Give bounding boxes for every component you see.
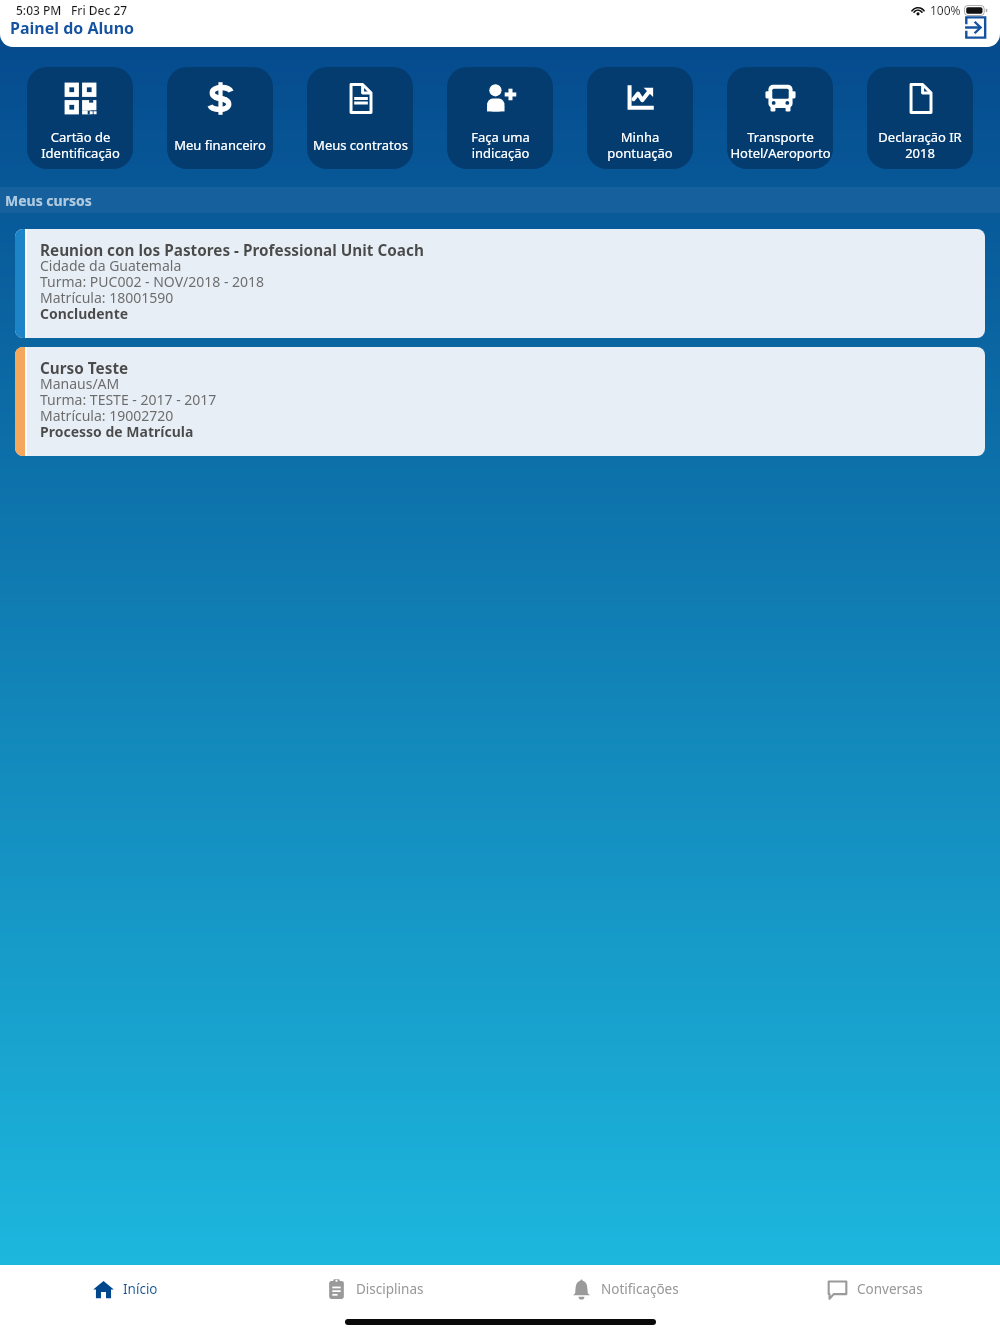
button[interactable]: Faça uma indicação: [447, 67, 553, 169]
button[interactable]: Notificações: [500, 1265, 750, 1313]
staticText: Minha pontuação: [607, 128, 673, 162]
button[interactable]: Meus contratos: [307, 67, 413, 169]
button[interactable]: Conversas: [750, 1265, 1000, 1313]
staticText: Painel do Aluno: [10, 17, 135, 39]
staticText: Reunion con los Pastores - Professional …: [40, 240, 424, 256]
staticText: Conversas: [857, 1280, 923, 1298]
staticText: Meus contratos: [313, 136, 408, 154]
staticText: Disciplinas: [356, 1280, 424, 1298]
button[interactable]: Disciplinas: [250, 1265, 500, 1313]
button[interactable]: Cartão de Identificação: [27, 67, 133, 169]
staticText: 5:03 PM: [16, 2, 62, 18]
staticText: Matrícula: 19002720: [40, 406, 174, 422]
staticText: Faça uma indicação: [471, 128, 530, 162]
button[interactable]: Declaração IR 2018: [867, 67, 973, 169]
staticText: Processo de Matrícula: [40, 422, 194, 438]
staticText: Concludente: [40, 304, 129, 320]
button[interactable]: Sair: [964, 16, 987, 39]
staticText: Início: [123, 1280, 158, 1298]
staticText: Turma: PUC002 - NOV/2018 - 2018: [40, 272, 265, 288]
button[interactable]: Minha pontuação: [587, 67, 693, 169]
staticText: Cidade da Guatemala: [40, 256, 182, 272]
button[interactable]: Início: [0, 1265, 250, 1313]
staticText: Cartão de Identificação: [41, 128, 120, 162]
button[interactable]: Reunion con los Pastores - Professional …: [15, 229, 985, 338]
staticText: Notificações: [601, 1280, 679, 1298]
staticText: 100%: [930, 2, 961, 18]
staticText: Transporte Hotel/Aeroporto: [730, 128, 831, 162]
button[interactable]: Transporte Hotel/Aeroporto: [727, 67, 833, 169]
staticText: Matrícula: 18001590: [40, 288, 174, 304]
staticText: Turma: TESTE - 2017 - 2017: [40, 390, 217, 406]
staticText: Meus cursos: [5, 191, 92, 210]
staticText: Fri Dec 27: [71, 2, 128, 18]
staticText: Meu financeiro: [174, 136, 266, 154]
staticText: Manaus/AM: [40, 374, 120, 390]
staticText: Declaração IR 2018: [878, 128, 962, 162]
button[interactable]: Meu financeiro: [167, 67, 273, 169]
staticText: Curso Teste: [40, 358, 129, 374]
button[interactable]: Curso Teste: [15, 347, 985, 456]
